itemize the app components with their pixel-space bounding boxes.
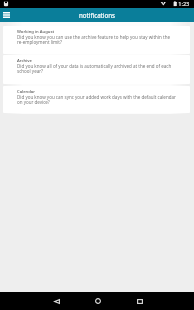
button[interactable]: Recent apps <box>119 292 161 310</box>
staticText: notifications <box>79 11 115 19</box>
staticText: Did you know you can sync your added wor… <box>17 94 176 106</box>
button[interactable]: Working in August <box>3 26 190 54</box>
staticText: Calendar <box>17 89 35 95</box>
staticText: 11:23 <box>175 0 190 8</box>
staticText: Did you know all of your data is automat… <box>17 63 176 75</box>
button[interactable]: Open navigation menu <box>0 8 12 22</box>
staticText: Did you know you can use the archive fea… <box>17 34 176 46</box>
staticText: Archive <box>17 58 32 64</box>
button[interactable]: Back <box>37 292 77 310</box>
button[interactable]: Calendar <box>3 86 190 113</box>
button[interactable]: Archive <box>3 55 190 84</box>
staticText: Working in August <box>17 29 55 35</box>
button[interactable]: Home <box>77 292 119 310</box>
